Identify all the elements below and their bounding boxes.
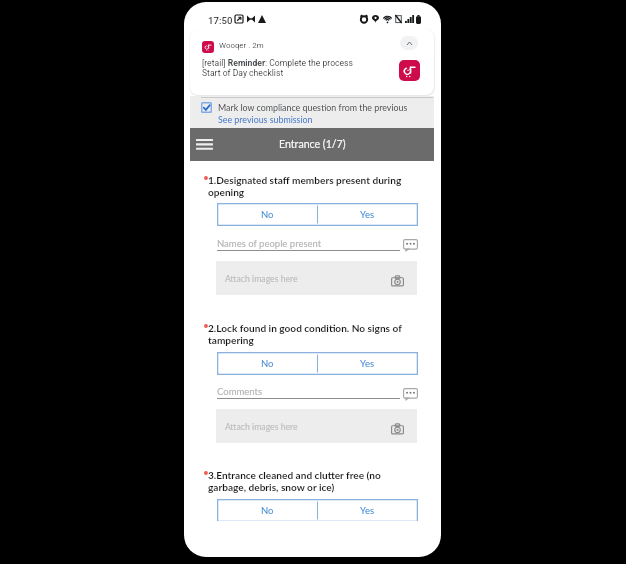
button[interactable]: No xyxy=(217,203,317,226)
staticText: Entrance (1/7) xyxy=(279,138,346,151)
button[interactable]: No xyxy=(217,499,317,521)
staticText: Names of people present xyxy=(217,238,322,249)
staticText: See previous submission xyxy=(218,114,313,125)
staticText: [retail] Reminder: Complete the process … xyxy=(202,58,392,78)
button[interactable]: Yes xyxy=(317,499,418,521)
staticText: 17:50 xyxy=(208,15,233,26)
button[interactable]: No xyxy=(217,352,317,375)
button[interactable]: Comments xyxy=(217,386,400,399)
staticText: No xyxy=(261,358,274,369)
button[interactable]: Add comment xyxy=(403,388,418,401)
staticText: 3.Entrance cleaned and clutter free (no … xyxy=(208,469,403,493)
staticText: Mark low compliance question from the pr… xyxy=(218,102,408,113)
staticText: Attach images here xyxy=(225,421,298,431)
button[interactable]: Collapse notification xyxy=(400,36,418,50)
button[interactable]: Attach images here xyxy=(216,261,417,295)
button[interactable]: Open navigation menu xyxy=(192,128,216,161)
staticText: No xyxy=(261,209,274,220)
staticText: Attach images here xyxy=(225,273,298,283)
button[interactable]: Names of people present xyxy=(217,238,400,251)
staticText: Yes xyxy=(360,209,375,220)
button[interactable]: Wooqer . 2m xyxy=(190,29,434,95)
button[interactable]: Mark low compliance question from the pr… xyxy=(190,96,434,128)
staticText: Yes xyxy=(360,505,375,516)
staticText: Comments xyxy=(217,386,263,397)
button[interactable]: Yes xyxy=(317,352,418,375)
staticText: 2.Lock found in good condition. No signs… xyxy=(208,322,403,346)
staticText: Yes xyxy=(360,358,375,369)
staticText: No xyxy=(261,505,274,516)
button[interactable]: Yes xyxy=(317,203,418,226)
staticText: Wooqer . 2m xyxy=(219,41,264,50)
button[interactable]: Attach images here xyxy=(216,409,417,443)
staticText: 1.Designated staff members present durin… xyxy=(208,174,403,198)
button[interactable]: Add comment xyxy=(403,239,418,252)
